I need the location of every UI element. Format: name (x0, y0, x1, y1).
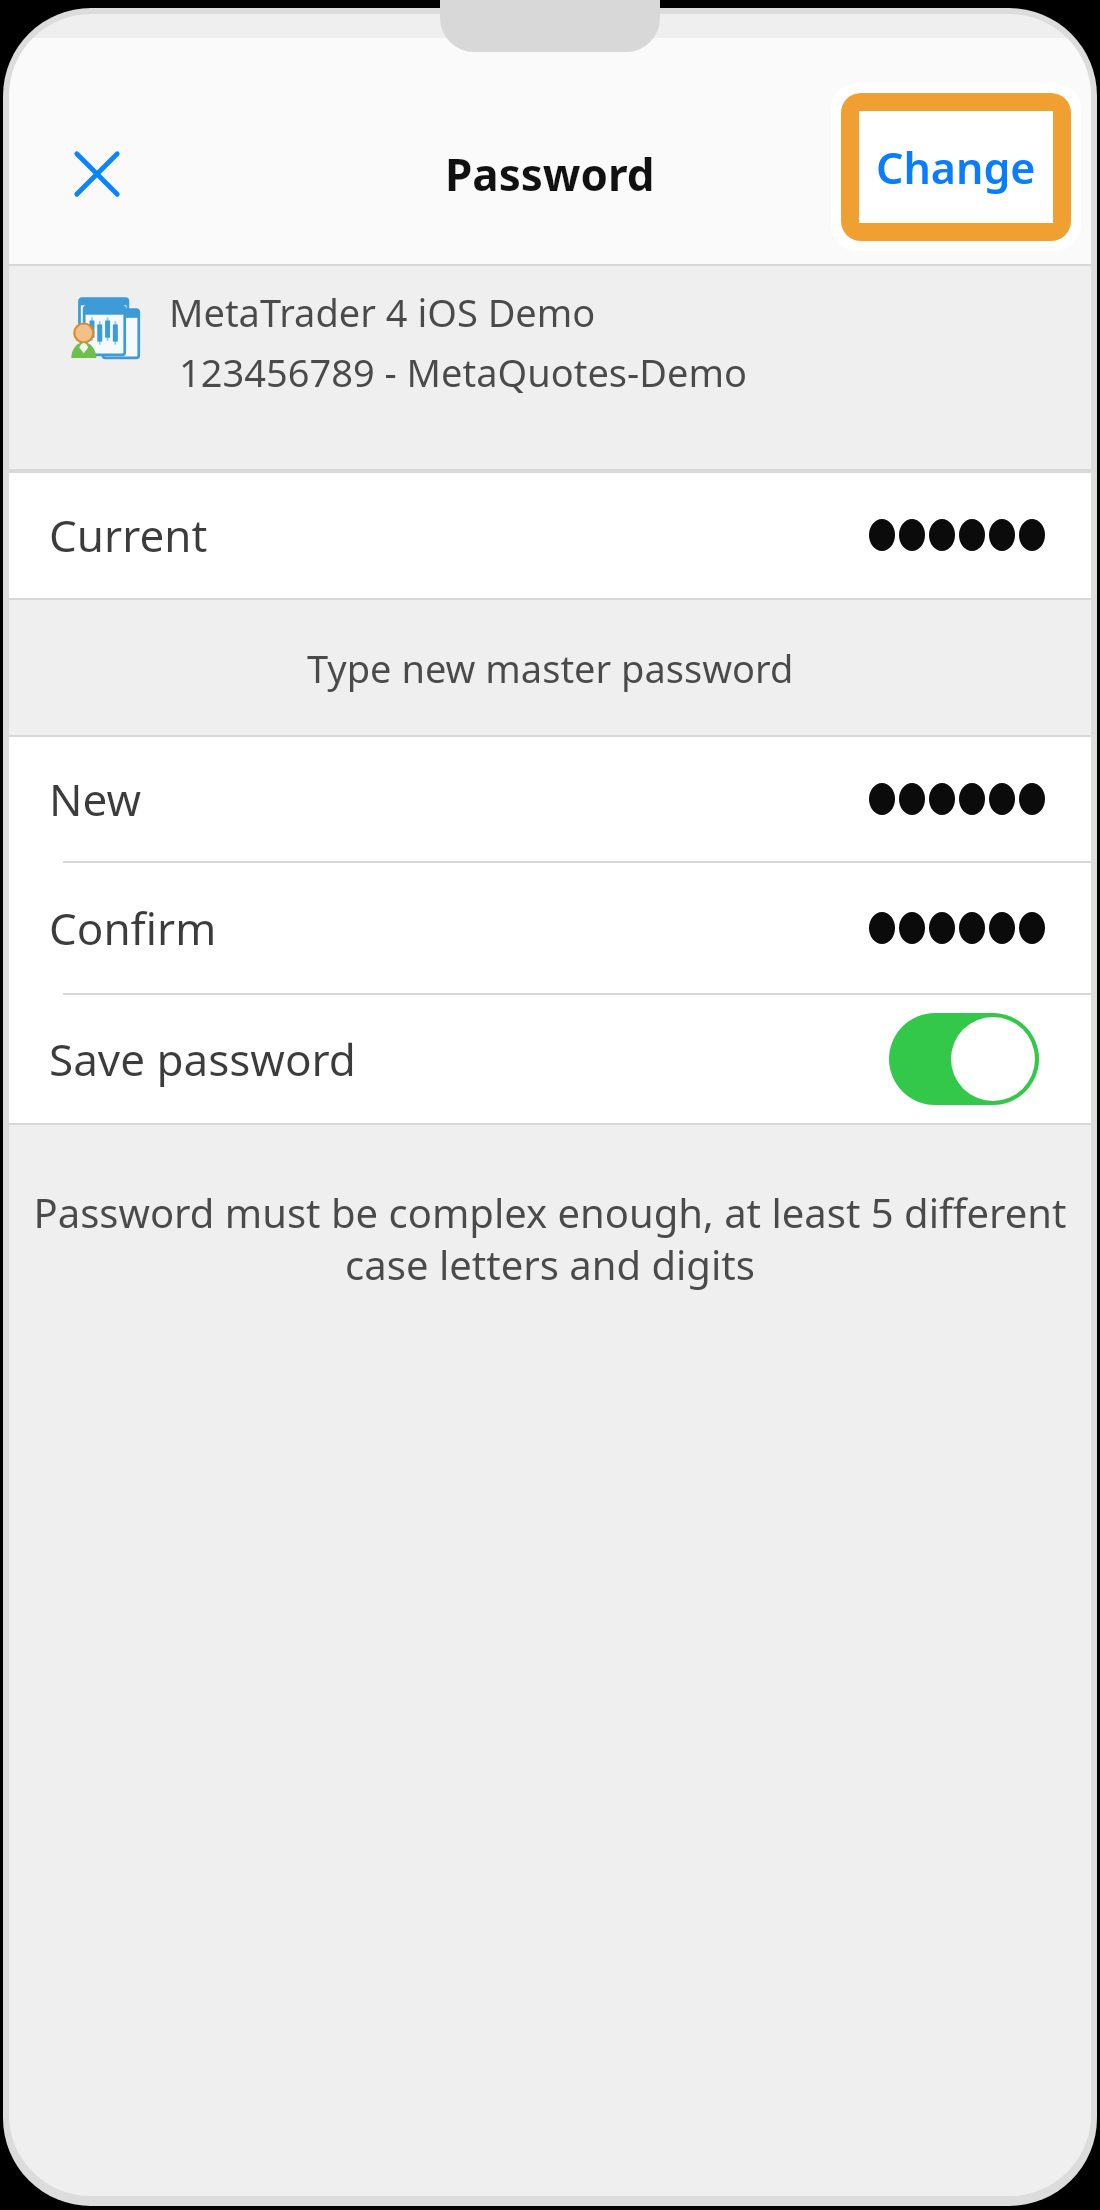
staticText: Type new master password (307, 642, 794, 694)
staticText: New (49, 769, 141, 829)
button[interactable]: Current (9, 471, 1091, 598)
staticText: Password (445, 144, 655, 204)
button[interactable]: Confirm (9, 863, 1091, 993)
button[interactable]: New (9, 737, 1091, 861)
button[interactable]: Close (49, 126, 145, 222)
staticText: Password must be complex enough, at leas… (9, 1185, 1091, 1292)
button[interactable]: Save password (9, 995, 1091, 1123)
button[interactable]: Change (831, 83, 1081, 251)
staticText: Save password (49, 1029, 356, 1089)
staticText: 123456789 - MetaQuotes-Demo (179, 346, 747, 398)
staticText: Change (876, 138, 1036, 197)
staticText: Current (49, 505, 208, 565)
staticText: Confirm (49, 898, 217, 958)
staticText: MetaTrader 4 iOS Demo (169, 286, 596, 338)
